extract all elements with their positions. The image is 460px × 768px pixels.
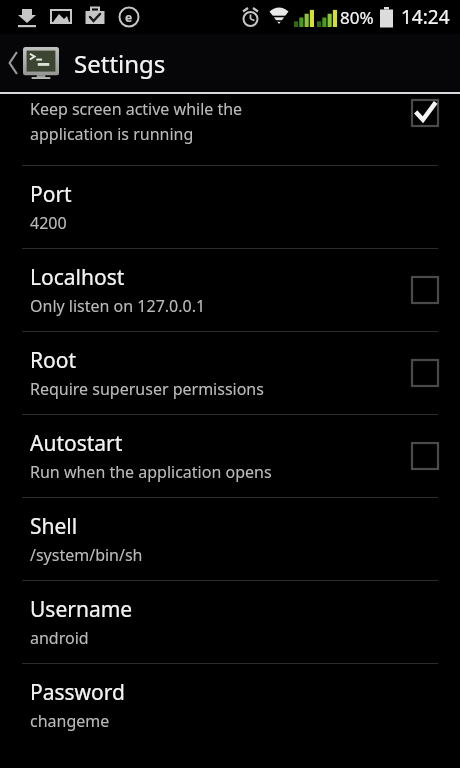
staticText: Only listen on 127.0.0.1 — [30, 295, 206, 317]
staticText: 4200 — [30, 212, 67, 234]
staticText: 80% — [340, 6, 374, 29]
staticText: Username — [30, 595, 133, 624]
button[interactable]: Username — [0, 581, 460, 663]
staticText: Shell — [30, 512, 78, 541]
staticText: Require superuser permissions — [30, 378, 264, 400]
staticText: Root — [30, 346, 77, 375]
staticText: Run when the application opens — [30, 461, 272, 483]
button[interactable]: Localhost — [0, 249, 460, 331]
staticText: android — [30, 627, 89, 649]
button[interactable]: Up — [6, 34, 64, 92]
button[interactable]: Keep screen active while the application… — [0, 94, 460, 165]
staticText: 14:24 — [401, 4, 450, 30]
staticText: e — [125, 9, 133, 25]
staticText: Keep screen active while the application… — [30, 98, 243, 144]
button[interactable]: Port — [0, 166, 460, 248]
staticText: changeme — [30, 710, 110, 732]
staticText: Localhost — [30, 263, 125, 292]
staticText: Password — [30, 678, 125, 707]
staticText: Autostart — [30, 429, 123, 458]
button[interactable]: Password — [0, 664, 460, 746]
staticText: Port — [30, 180, 72, 209]
button[interactable]: Root — [0, 332, 460, 414]
staticText: /system/bin/sh — [30, 544, 143, 566]
button[interactable]: Autostart — [0, 415, 460, 497]
button[interactable]: Shell — [0, 498, 460, 580]
staticText: Settings — [74, 47, 166, 80]
